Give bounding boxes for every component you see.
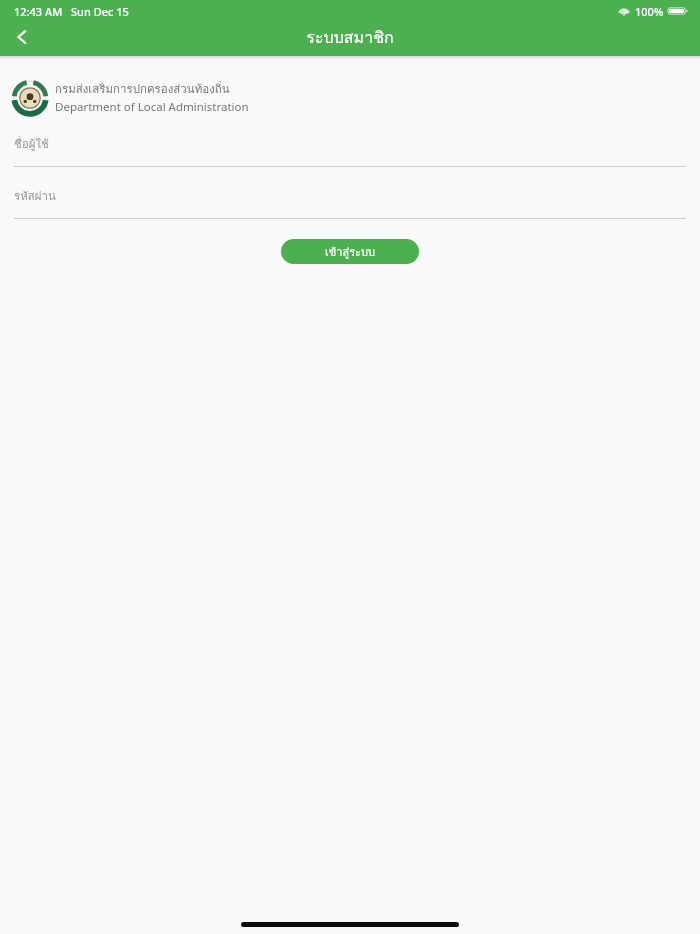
staticText: รหัสผ่าน — [14, 187, 56, 205]
button[interactable]: รหัสผ่าน — [14, 187, 686, 219]
staticText: 100% — [635, 4, 664, 19]
staticText: กรมส่งเสริมการปกครองส่วนท้องถิ่น — [55, 80, 230, 98]
staticText: ระบบสมาชิก — [306, 25, 394, 50]
staticText: 12:43 AM — [14, 4, 63, 19]
staticText: เข้าสู่ระบบ — [325, 243, 375, 260]
staticText: Sun Dec 15 — [71, 4, 129, 19]
button[interactable]: เข้าสู่ระบบ — [281, 239, 419, 264]
button[interactable]: Back — [0, 15, 44, 59]
button[interactable]: ชื่อผู้ใช้ — [14, 135, 686, 167]
staticText: Department of Local Administration — [55, 99, 249, 115]
staticText: ชื่อผู้ใช้ — [14, 135, 49, 153]
